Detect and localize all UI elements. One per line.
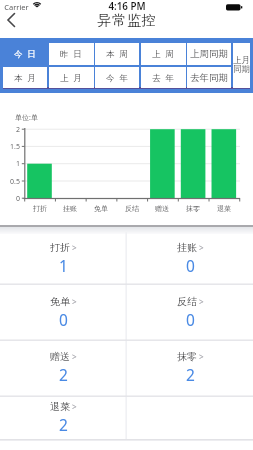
- button[interactable]: 本 月: [3, 67, 47, 88]
- staticText: >: [199, 296, 204, 307]
- staticText: 今 日: [14, 48, 37, 60]
- button[interactable]: 免单: [0, 284, 127, 340]
- staticText: 赠送: [155, 204, 169, 213]
- button[interactable]: 上 月: [49, 67, 94, 88]
- staticText: 抹零: [177, 350, 197, 363]
- button[interactable]: 本 周: [95, 43, 139, 65]
- button[interactable]: 抹零: [127, 340, 253, 396]
- staticText: 异常监控: [97, 12, 157, 28]
- staticText: 退菜: [50, 400, 70, 413]
- button[interactable]: [2, 10, 22, 30]
- button[interactable]: 退菜: [0, 396, 127, 440]
- staticText: 2: [59, 364, 68, 385]
- staticText: 0.5: [10, 177, 20, 187]
- staticText: 去年同期: [190, 72, 228, 84]
- staticText: 昨 日: [60, 48, 83, 60]
- staticText: 退菜: [217, 204, 231, 213]
- button[interactable]: 今 日: [3, 43, 47, 65]
- staticText: 2: [186, 364, 195, 385]
- staticText: 4:16 PM: [108, 0, 146, 12]
- button[interactable]: 上周同期: [187, 43, 231, 65]
- button[interactable]: 打折: [0, 232, 127, 284]
- button[interactable]: 挂账: [127, 232, 253, 284]
- button[interactable]: 上 周: [141, 43, 186, 65]
- staticText: >: [72, 401, 77, 412]
- staticText: 挂账: [177, 241, 197, 254]
- staticText: 打折: [33, 204, 47, 213]
- staticText: 2: [15, 125, 20, 135]
- staticText: 单位:单: [15, 113, 38, 123]
- staticText: 0: [186, 309, 195, 330]
- staticText: 0: [59, 309, 68, 330]
- staticText: 1: [59, 255, 68, 276]
- staticText: 0: [186, 255, 195, 276]
- staticText: 今 年: [106, 72, 129, 84]
- staticText: 免单: [94, 204, 108, 213]
- staticText: 上周同期: [190, 48, 228, 60]
- button[interactable]: 今 年: [95, 67, 139, 88]
- staticText: 免单: [50, 295, 70, 308]
- staticText: 上 月: [60, 72, 83, 84]
- button[interactable]: 去年同期: [187, 67, 231, 88]
- button[interactable]: 上月 同期: [233, 43, 250, 88]
- staticText: 挂账: [63, 204, 77, 213]
- staticText: 赠送: [50, 350, 70, 363]
- button[interactable]: 赠送: [0, 340, 127, 396]
- staticText: 打折: [50, 241, 70, 254]
- staticText: 上月 同期: [233, 55, 250, 74]
- staticText: Carrier: [4, 2, 29, 12]
- staticText: 反结: [177, 295, 197, 308]
- staticText: 上 周: [152, 48, 175, 60]
- button[interactable]: 昨 日: [49, 43, 94, 65]
- staticText: >: [72, 296, 77, 307]
- staticText: 去 年: [152, 72, 175, 84]
- staticText: >: [72, 351, 77, 362]
- staticText: 1: [15, 159, 20, 169]
- staticText: 0: [15, 194, 20, 204]
- staticText: 本 月: [14, 72, 37, 84]
- staticText: 抹零: [186, 204, 200, 213]
- button[interactable]: 反结: [127, 284, 253, 340]
- staticText: 1.5: [10, 142, 20, 152]
- staticText: >: [199, 242, 204, 253]
- staticText: >: [72, 242, 77, 253]
- staticText: >: [199, 351, 204, 362]
- staticText: 反结: [125, 204, 139, 213]
- staticText: 本 周: [106, 48, 129, 60]
- staticText: 2: [59, 414, 68, 435]
- button[interactable]: 去 年: [141, 67, 186, 88]
